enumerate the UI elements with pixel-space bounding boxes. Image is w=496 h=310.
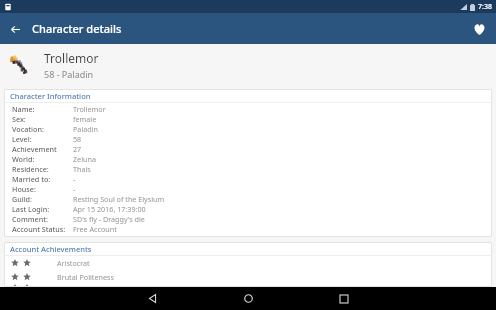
staticText: Sex: bbox=[12, 114, 26, 124]
button[interactable]: Home bbox=[200, 287, 296, 310]
staticText: - bbox=[73, 184, 76, 194]
staticText: Brutal Politeness bbox=[57, 272, 114, 282]
button[interactable]: Trollemor bbox=[0, 44, 496, 86]
button[interactable]: Recent apps bbox=[296, 287, 392, 310]
button[interactable]: High-Flyer bbox=[4, 284, 492, 287]
staticText: Residence: bbox=[12, 164, 49, 174]
staticText: - bbox=[73, 174, 76, 184]
button[interactable]: Guild: bbox=[4, 194, 492, 204]
staticText: Zeluna bbox=[73, 154, 96, 164]
button[interactable]: Account Status: bbox=[4, 224, 492, 234]
staticText: Guild: bbox=[12, 194, 33, 204]
staticText: Vocation: bbox=[12, 124, 44, 134]
staticText: Achievement Points: bbox=[12, 144, 73, 154]
staticText: Comment: bbox=[12, 214, 48, 224]
button[interactable]: Vocation: bbox=[4, 124, 492, 134]
staticText: 58 - Paladin bbox=[44, 68, 94, 80]
staticText: 27 bbox=[73, 144, 82, 154]
button[interactable]: Comment: bbox=[4, 214, 492, 224]
button[interactable]: Aristocrat bbox=[4, 256, 492, 270]
button[interactable]: Sex: bbox=[4, 114, 492, 124]
staticText: House: bbox=[12, 184, 36, 194]
staticText: High-Flyer bbox=[57, 284, 92, 287]
button[interactable]: World: bbox=[4, 154, 492, 164]
staticText: Resting Soul of the Elysium bbox=[73, 194, 165, 204]
button[interactable]: Married to: bbox=[4, 174, 492, 184]
staticText: Married to: bbox=[12, 174, 51, 184]
staticText: Trollemor bbox=[73, 104, 106, 114]
staticText: Aristocrat bbox=[57, 258, 90, 268]
staticText: Level: bbox=[12, 134, 32, 144]
button[interactable]: Achievement Points: bbox=[4, 144, 492, 154]
button[interactable]: Back bbox=[104, 287, 200, 310]
staticText: Trollemor bbox=[44, 50, 99, 66]
staticText: Character Information bbox=[10, 91, 91, 101]
button[interactable]: Last Login: bbox=[4, 204, 492, 214]
staticText: World: bbox=[12, 154, 35, 164]
staticText: Last Login: bbox=[12, 204, 50, 214]
staticText: Apr 15 2016, 17:39:00 bbox=[73, 204, 146, 214]
staticText: Account Status: bbox=[12, 224, 66, 234]
button[interactable]: Level: bbox=[4, 134, 492, 144]
staticText: 58 bbox=[73, 134, 82, 144]
staticText: Paladin bbox=[73, 124, 98, 134]
button[interactable]: Add to favourites bbox=[467, 17, 491, 41]
staticText: female bbox=[73, 114, 97, 124]
button[interactable]: Residence: bbox=[4, 164, 492, 174]
staticText: SD's fly - Draggy's die bbox=[73, 214, 145, 224]
staticText: Name: bbox=[12, 104, 35, 114]
button[interactable]: Brutal Politeness bbox=[4, 270, 492, 284]
staticText: 7:38 bbox=[478, 2, 492, 12]
staticText: Thais bbox=[73, 164, 91, 174]
staticText: Free Account bbox=[73, 224, 117, 234]
button[interactable]: Name: bbox=[4, 104, 492, 114]
button[interactable]: House: bbox=[4, 184, 492, 194]
staticText: Character details bbox=[32, 21, 122, 36]
button[interactable]: Navigate up bbox=[4, 18, 26, 40]
staticText: Account Achievements bbox=[10, 244, 92, 254]
